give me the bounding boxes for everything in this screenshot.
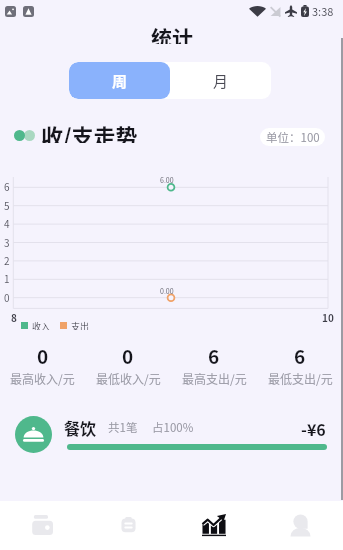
staticText: 6	[294, 342, 306, 370]
button[interactable]: 月	[170, 62, 271, 99]
staticText: 6	[4, 179, 10, 191]
button[interactable]: Wallet	[0, 501, 85, 550]
button[interactable]: 周	[69, 62, 170, 99]
staticText: 周	[112, 70, 128, 92]
staticText: 最高支出/元	[182, 370, 247, 387]
staticText: 3:38	[312, 3, 334, 19]
button[interactable]: Statistics	[171, 501, 257, 550]
staticText: 共1笔	[108, 419, 138, 436]
staticText: 收/支走势	[41, 119, 138, 143]
staticText: 6	[208, 342, 220, 370]
staticText: 6.00	[160, 175, 174, 185]
staticText: 5	[4, 198, 10, 210]
button[interactable]: Records	[85, 501, 171, 550]
staticText: 单位：100	[266, 129, 320, 146]
staticText: 10	[322, 310, 334, 324]
staticText: 2	[4, 253, 10, 265]
staticText: 3	[4, 235, 10, 247]
staticText: 4	[4, 216, 10, 228]
staticText: 支出	[71, 320, 90, 330]
staticText: 最低收入/元	[96, 370, 161, 387]
staticText: -¥6	[301, 417, 326, 440]
staticText: 统计	[151, 22, 193, 44]
staticText: 占100%	[152, 419, 194, 436]
staticText: 收入	[32, 320, 51, 330]
staticText: 月	[213, 70, 229, 92]
staticText: 0	[4, 290, 10, 302]
staticText: 0.00	[160, 286, 174, 296]
staticText: 0	[37, 342, 49, 370]
staticText: 0	[122, 342, 134, 370]
button[interactable]: 餐饮	[0, 408, 343, 456]
staticText: 8	[11, 310, 17, 324]
staticText: 最低支出/元	[268, 370, 333, 387]
staticText: 餐饮	[64, 416, 97, 439]
button[interactable]: Profile	[257, 501, 343, 550]
staticText: 最高收入/元	[10, 370, 75, 387]
staticText: 1	[4, 271, 10, 283]
